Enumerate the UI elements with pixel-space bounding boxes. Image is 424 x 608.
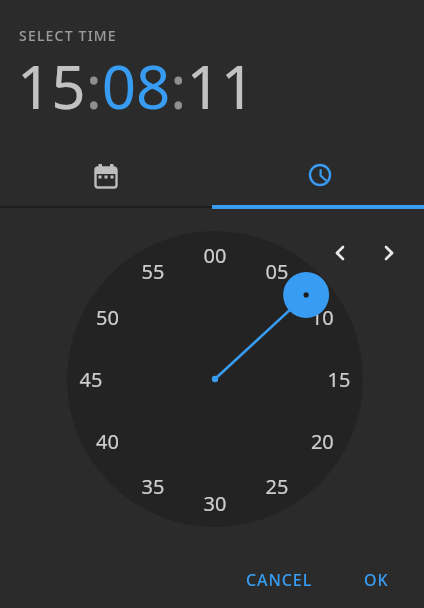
staticText: OK: [364, 569, 389, 591]
button[interactable]: [212, 144, 424, 208]
button[interactable]: [322, 235, 358, 271]
staticText: SELECT TIME: [19, 26, 117, 45]
staticText: 15:08:11: [17, 45, 256, 127]
staticText: CANCEL: [246, 569, 313, 591]
button[interactable]: OK: [350, 560, 402, 599]
button[interactable]: [371, 235, 407, 271]
button[interactable]: CANCEL: [238, 560, 320, 599]
button[interactable]: [0, 144, 212, 208]
